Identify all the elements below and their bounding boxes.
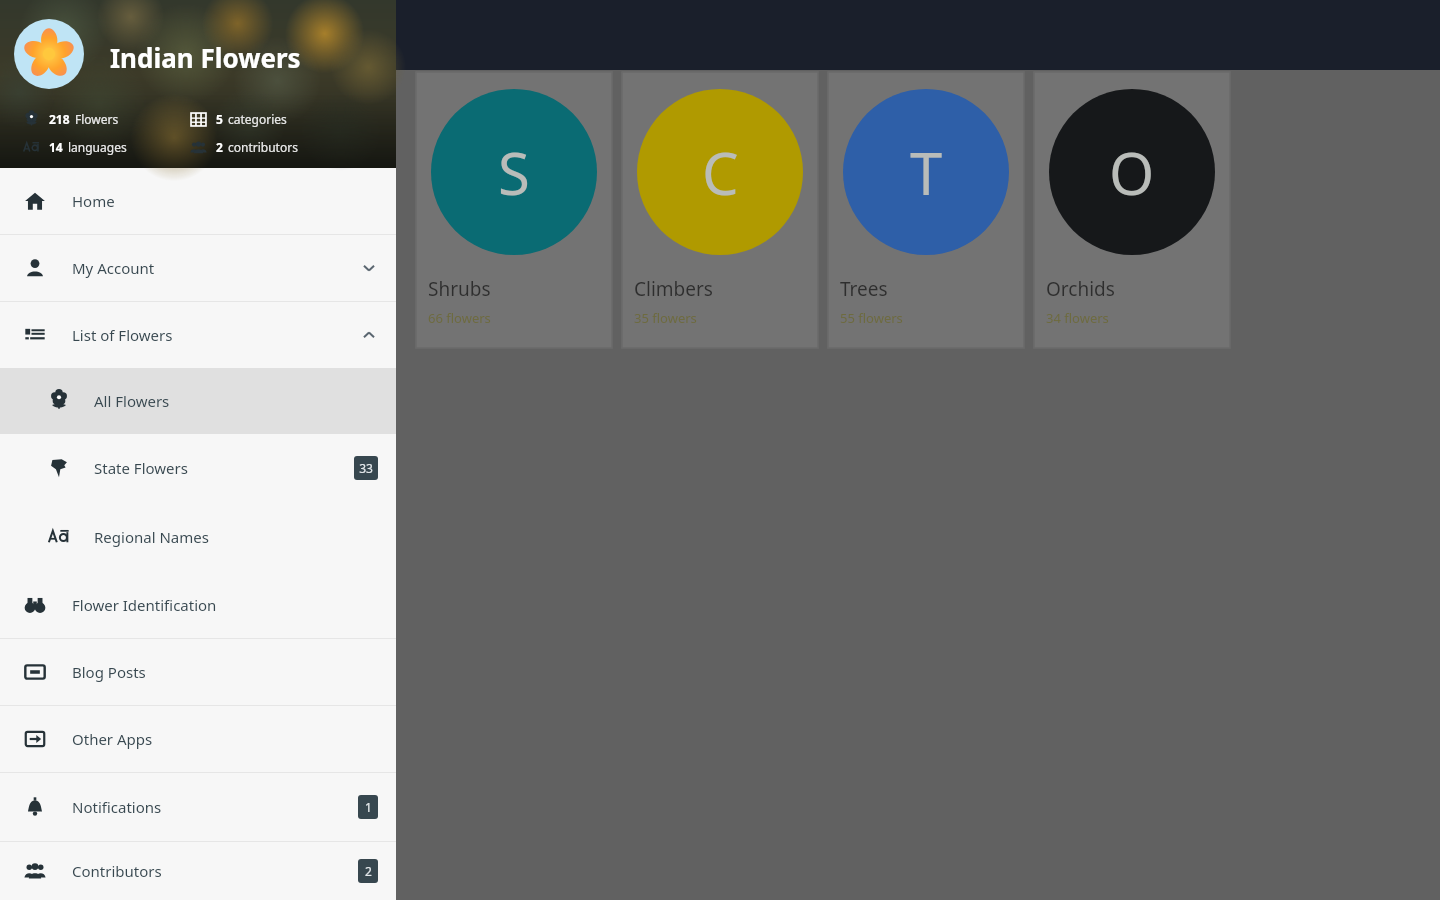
staticText: State Flowers bbox=[94, 458, 188, 478]
staticText: 66 flowers bbox=[428, 309, 491, 327]
staticText: Home bbox=[72, 191, 115, 211]
button[interactable]: My Account bbox=[0, 235, 396, 301]
staticText: All Flowers bbox=[94, 391, 170, 411]
button[interactable]: Other Apps bbox=[0, 706, 396, 772]
staticText: Contributors bbox=[72, 861, 162, 881]
other: Contributors bbox=[190, 139, 207, 156]
button[interactable]: C bbox=[622, 72, 818, 348]
staticText: 55 flowers bbox=[840, 309, 903, 327]
other: Flower Identification bbox=[24, 594, 46, 616]
staticText: Regional Names bbox=[94, 527, 209, 547]
button[interactable]: S bbox=[416, 72, 612, 348]
staticText: C bbox=[702, 133, 739, 212]
staticText: T bbox=[910, 133, 943, 212]
staticText: Flowers bbox=[75, 111, 119, 127]
other: My Account bbox=[24, 257, 46, 279]
other: Home bbox=[24, 190, 46, 212]
other: Regional Names bbox=[48, 526, 70, 548]
staticText: Climbers bbox=[634, 276, 713, 302]
other: Categories bbox=[190, 111, 207, 128]
other: List of Flowers bbox=[24, 324, 46, 346]
staticText: 218 bbox=[49, 111, 70, 127]
other: Contributors bbox=[24, 860, 46, 882]
staticText: contributors bbox=[228, 139, 298, 155]
button[interactable]: Blog Posts bbox=[0, 639, 396, 705]
staticText: Orchids bbox=[1046, 276, 1115, 302]
staticText: 35 flowers bbox=[634, 309, 697, 327]
staticText: 1 bbox=[365, 799, 372, 815]
button[interactable]: T bbox=[828, 72, 1024, 348]
staticText: languages bbox=[68, 139, 127, 155]
staticText: O bbox=[1109, 133, 1155, 212]
staticText: 2 bbox=[216, 139, 223, 155]
staticText: My Account bbox=[72, 258, 155, 278]
staticText: Trees bbox=[840, 276, 888, 302]
staticText: Notifications bbox=[72, 797, 162, 817]
other: Other Apps bbox=[24, 728, 46, 750]
staticText: 14 bbox=[49, 139, 63, 155]
staticText: 2 bbox=[365, 863, 372, 879]
staticText: 34 flowers bbox=[1046, 309, 1109, 327]
other: Blog Posts bbox=[24, 661, 46, 683]
button[interactable]: O bbox=[1034, 72, 1230, 348]
staticText: S bbox=[498, 133, 530, 212]
staticText: Shrubs bbox=[428, 276, 491, 302]
button[interactable]: State Flowers bbox=[0, 434, 396, 502]
staticText: 5 bbox=[216, 111, 223, 127]
other: Indian Flowers logo bbox=[21, 26, 77, 82]
other: All Flowers bbox=[23, 111, 40, 128]
button[interactable]: Regional Names bbox=[0, 502, 396, 572]
other: Regional Names bbox=[23, 139, 40, 156]
staticText: Indian Flowers bbox=[110, 40, 301, 75]
other: All Flowers bbox=[48, 390, 70, 412]
button[interactable]: All Flowers bbox=[0, 368, 396, 434]
staticText: Other Apps bbox=[72, 729, 153, 749]
staticText: Flower Identification bbox=[72, 595, 217, 615]
staticText: 33 bbox=[359, 460, 373, 476]
other: State Flowers bbox=[48, 457, 70, 479]
button[interactable]: Notifications bbox=[0, 773, 396, 841]
other: Collapse bbox=[360, 326, 378, 344]
button[interactable]: Home bbox=[0, 168, 396, 234]
other: Expand bbox=[360, 259, 378, 277]
staticText: List of Flowers bbox=[72, 325, 173, 345]
button[interactable]: Flower Identification bbox=[0, 572, 396, 638]
other: Notifications bbox=[24, 796, 46, 818]
staticText: categories bbox=[228, 111, 287, 127]
staticText: Blog Posts bbox=[72, 662, 146, 682]
button[interactable]: List of Flowers bbox=[0, 302, 396, 368]
button[interactable]: Contributors bbox=[0, 842, 396, 900]
